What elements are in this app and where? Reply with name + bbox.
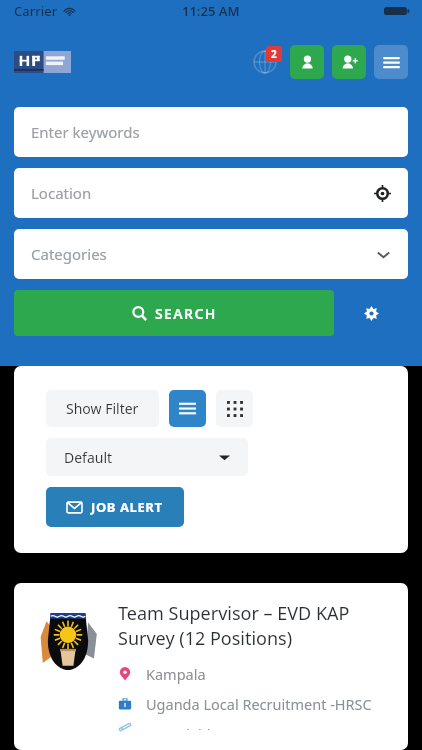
button[interactable]: Search settings	[334, 290, 408, 336]
button[interactable]: HR Service Centre home	[14, 51, 71, 73]
button[interactable]: Grid view	[216, 390, 253, 427]
staticText: Show Filter	[66, 399, 139, 418]
button[interactable]: Show Filter	[46, 390, 159, 427]
button[interactable]: Default	[46, 438, 248, 476]
button[interactable]: JOB ALERT	[46, 487, 184, 527]
button[interactable]: Categories	[14, 229, 408, 279]
button[interactable]: Language	[248, 45, 282, 79]
staticText: Default	[64, 448, 113, 467]
staticText: Survey (12 Positions)	[118, 626, 293, 651]
staticText: JOB ALERT	[91, 498, 163, 516]
staticText: Location	[31, 183, 92, 203]
button[interactable]: Register	[332, 45, 366, 79]
staticText: negotiable	[146, 724, 219, 730]
staticText: SEARCH	[155, 304, 217, 323]
staticText: 11:25 AM	[182, 2, 240, 20]
button[interactable]: Location	[14, 168, 408, 218]
button[interactable]: List view	[169, 390, 206, 427]
staticText: Categories	[31, 244, 107, 264]
button[interactable]: Sign in	[290, 45, 324, 79]
staticText: Carrier	[14, 2, 58, 20]
button[interactable]: Menu	[374, 45, 408, 79]
staticText: 2	[271, 47, 277, 61]
button[interactable]: Team Supervisor – EVD KAP	[14, 583, 408, 750]
staticText: Team Supervisor – EVD KAP	[118, 601, 350, 626]
staticText: Uganda Local Recruitment -HRSC	[146, 694, 372, 714]
button[interactable]: SEARCH	[14, 290, 334, 336]
staticText: Kampala	[146, 664, 206, 684]
staticText: Enter keywords	[31, 122, 140, 142]
button[interactable]: Enter keywords	[14, 107, 408, 157]
